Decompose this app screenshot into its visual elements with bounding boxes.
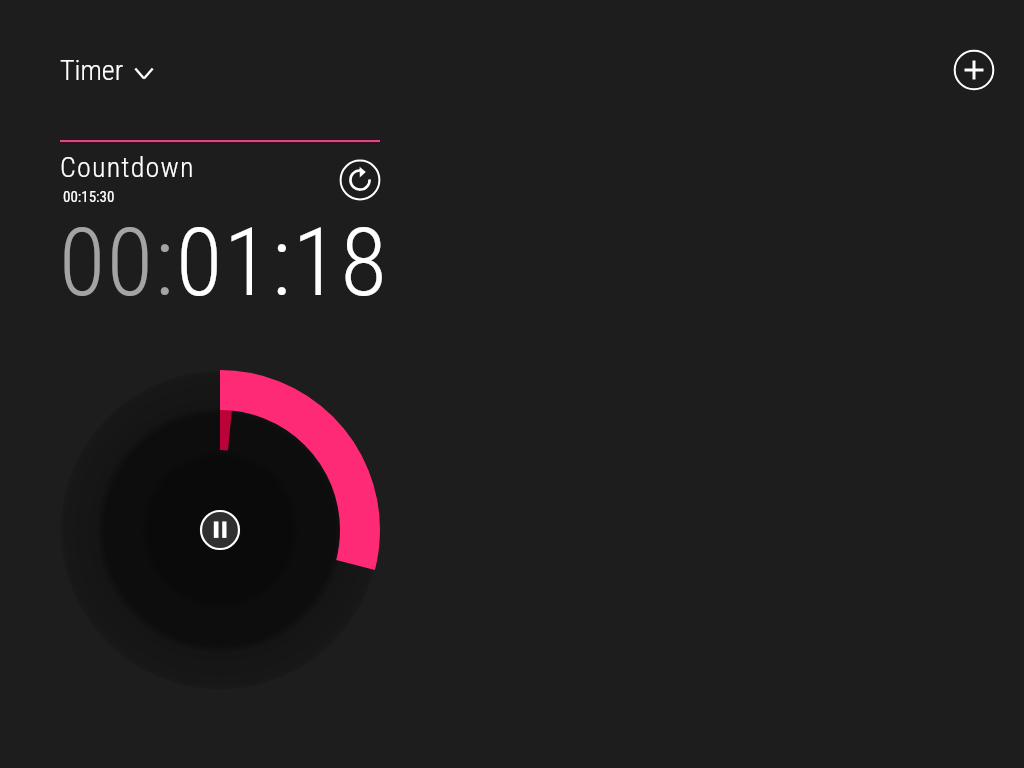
staticText: Countdown xyxy=(60,151,195,184)
button[interactable]: Timer xyxy=(52,50,163,91)
staticText: 00: xyxy=(59,207,176,318)
button[interactable]: Pause xyxy=(192,502,248,558)
button[interactable]: Add timer xyxy=(946,42,1002,98)
staticText: 01:18 xyxy=(176,207,389,318)
button[interactable]: Reset timer xyxy=(332,152,388,208)
staticText: Timer xyxy=(60,54,124,87)
staticText: 00:15:30 xyxy=(63,188,115,206)
